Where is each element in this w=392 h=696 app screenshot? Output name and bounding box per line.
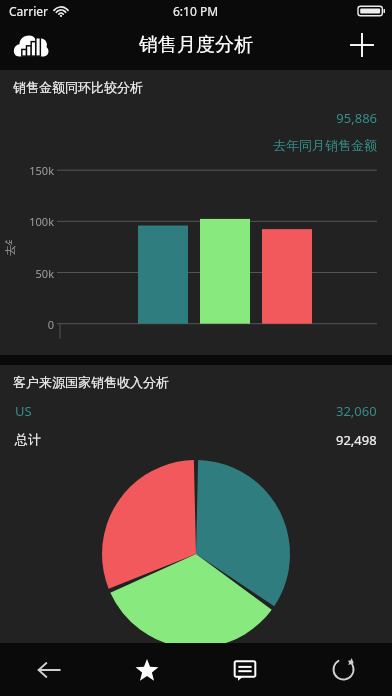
staticText: 100k [16, 214, 54, 229]
button[interactable]: Messages [196, 643, 294, 696]
staticText: 92,498 [336, 431, 377, 449]
staticText: 0 [16, 317, 54, 332]
staticText: 销售月度分析 [139, 33, 253, 57]
button[interactable]: Refresh [294, 643, 392, 696]
staticText: 6:10 PM [173, 3, 219, 19]
staticText: 50k [16, 266, 54, 281]
staticText: 总计 [15, 431, 41, 447]
staticText: 客户来源国家销售收入分析 [13, 374, 169, 390]
button[interactable]: App logo [8, 22, 54, 68]
staticText: 32,060 [336, 402, 377, 420]
staticText: Carrier [9, 3, 49, 19]
staticText: 150k [16, 163, 54, 178]
staticText: 去年同月销售金额 [0, 137, 377, 153]
staticText: 销售金额同环比较分析 [13, 79, 143, 95]
button[interactable]: Add [339, 22, 385, 68]
staticText: 去年同月销售金额 [3, 240, 17, 256]
button[interactable]: Favorites [98, 643, 196, 696]
staticText: 95,886 [0, 109, 377, 127]
staticText: US [15, 402, 32, 420]
button[interactable]: Back [0, 643, 98, 696]
